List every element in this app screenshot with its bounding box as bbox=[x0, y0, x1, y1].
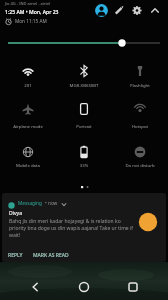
staticText: Jio 4G - IND airtel - airtel bbox=[5, 1, 51, 6]
staticText: Do not disturb bbox=[112, 162, 168, 168]
button[interactable]: Airplane mode bbox=[0, 93, 56, 131]
button[interactable]: Mobile data bbox=[0, 136, 56, 170]
button[interactable]: Portrait bbox=[56, 93, 112, 131]
staticText: MGR-XB650BT bbox=[56, 82, 112, 88]
button[interactable] bbox=[94, 3, 109, 18]
button[interactable]: 33% bbox=[56, 136, 112, 170]
staticText: MARK AS READ bbox=[33, 252, 69, 259]
button[interactable]: Do not disturb bbox=[112, 136, 168, 170]
button[interactable]: MARK AS READ bbox=[32, 249, 80, 262]
button[interactable] bbox=[149, 5, 161, 17]
button[interactable] bbox=[131, 5, 143, 17]
staticText: Portrait bbox=[56, 123, 112, 129]
button[interactable] bbox=[113, 5, 125, 17]
button[interactable]: MGR-XB650BT bbox=[56, 55, 112, 90]
staticText: Bahq jis din meri kadar hojayegi & is re… bbox=[9, 218, 135, 239]
staticText: Mobile data bbox=[0, 162, 56, 168]
button[interactable] bbox=[77, 280, 91, 294]
staticText: 1:25 AM • Mon, Apr 23 bbox=[5, 9, 59, 16]
staticText: Divya bbox=[9, 210, 23, 217]
button[interactable]: Hotspot bbox=[112, 93, 168, 131]
staticText: Airplane mode bbox=[0, 123, 56, 129]
button[interactable] bbox=[126, 280, 140, 294]
button[interactable]: 201 bbox=[0, 55, 56, 90]
staticText: Flashlight bbox=[112, 82, 168, 88]
staticText: Mon 11:15 AM bbox=[15, 18, 47, 24]
staticText: Messaging bbox=[18, 200, 42, 206]
staticText: 201 bbox=[0, 82, 56, 88]
button[interactable] bbox=[28, 280, 42, 294]
staticText: • now bbox=[45, 200, 58, 206]
staticText: REPLY bbox=[8, 252, 23, 259]
staticText: 33% bbox=[56, 162, 112, 168]
staticText: Hotspot bbox=[112, 123, 168, 129]
button[interactable]: Flashlight bbox=[112, 55, 168, 90]
button[interactable]: REPLY bbox=[2, 249, 32, 262]
button[interactable]: Messaging bbox=[2, 193, 166, 262]
